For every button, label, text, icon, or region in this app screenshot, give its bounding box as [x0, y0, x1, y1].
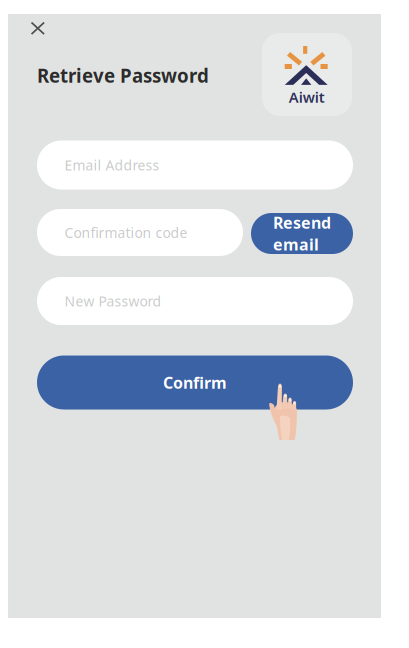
button[interactable]: Email Address: [37, 140, 353, 189]
staticText: Confirmation code: [64, 223, 187, 242]
button[interactable]: Confirm: [37, 355, 353, 409]
staticText: Confirm: [163, 372, 227, 393]
button[interactable]: New Password: [37, 277, 353, 325]
button[interactable]: Resend email: [251, 213, 353, 254]
staticText: Aiwit: [289, 87, 325, 107]
button[interactable]: Close: [19, 10, 56, 46]
staticText: New Password: [64, 292, 161, 310]
staticText: Email Address: [64, 156, 159, 174]
staticText: Resend email: [273, 212, 331, 255]
button[interactable]: Confirmation code: [37, 209, 243, 256]
staticText: Retrieve Password: [37, 63, 209, 88]
